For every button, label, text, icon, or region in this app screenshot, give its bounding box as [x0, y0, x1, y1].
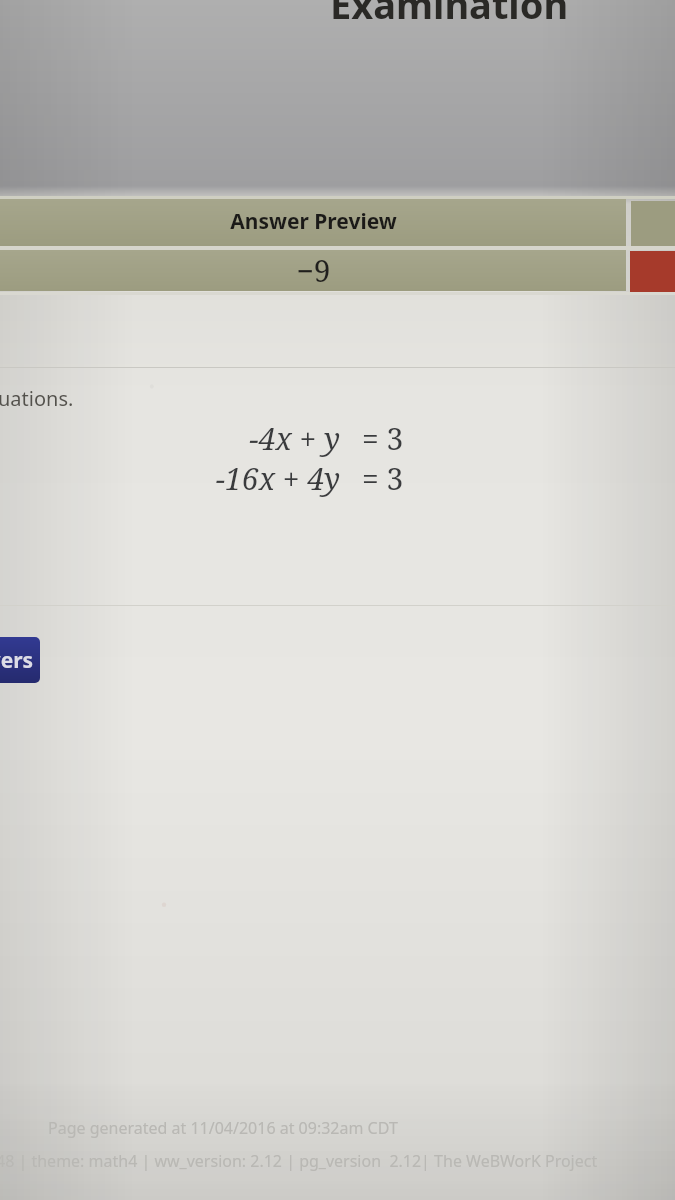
staticText: −9	[296, 250, 331, 291]
button[interactable]: Show Answers	[0, 637, 40, 683]
staticText: −4x + y	[249, 418, 340, 459]
staticText: 48 | theme: math4 | ww_version: 2.12 | p…	[0, 1150, 598, 1172]
staticText: Answer Preview	[230, 207, 397, 236]
staticText: −16x + 4y	[215, 458, 340, 499]
staticText: Examination	[330, 0, 569, 30]
staticText: Answers	[0, 646, 34, 675]
staticText: = 3	[362, 458, 404, 499]
staticText: Page generated at 11/04/2016 at 09:32am …	[48, 1117, 398, 1139]
staticText: uations.	[0, 385, 74, 412]
staticText: = 3	[362, 418, 404, 459]
